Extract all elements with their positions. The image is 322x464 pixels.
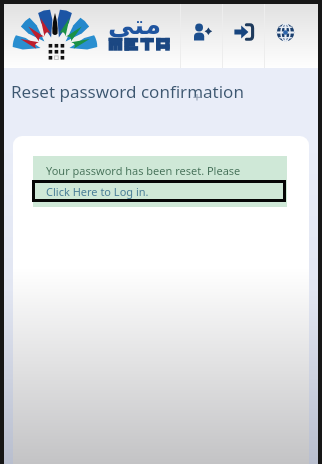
button[interactable]: Log in (223, 4, 264, 68)
button[interactable]: Click Here to Log in. (32, 180, 286, 202)
staticText: متى (108, 10, 162, 40)
staticText: Click Here to Log in. (46, 184, 149, 199)
button[interactable]: Register (181, 4, 222, 68)
staticText: Reset password confirmation (11, 80, 244, 103)
staticText: Your password has been reset. Please (46, 163, 241, 178)
button[interactable]: Language (265, 4, 306, 68)
